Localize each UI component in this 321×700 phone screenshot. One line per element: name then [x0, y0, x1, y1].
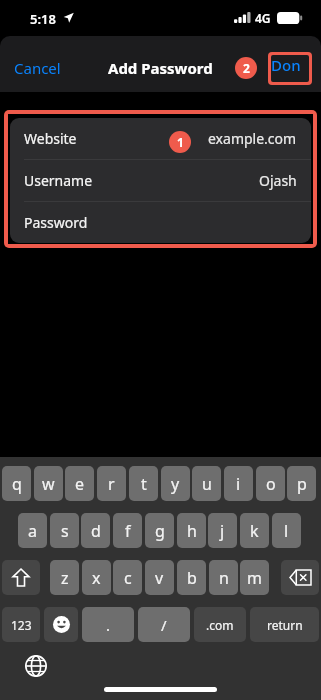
button[interactable]: k — [240, 513, 269, 548]
button[interactable]: i — [224, 466, 253, 501]
button[interactable]: d — [81, 513, 110, 548]
staticText: g — [155, 520, 165, 542]
staticText: example.com — [208, 129, 297, 148]
button[interactable]: . — [82, 607, 134, 642]
staticText: Password — [24, 213, 88, 232]
button[interactable]: Website — [10, 118, 311, 159]
staticText: Done — [271, 55, 309, 82]
staticText: u — [202, 473, 212, 495]
staticText: a — [28, 520, 37, 542]
button[interactable]: h — [177, 513, 206, 548]
staticText: 4G — [255, 10, 271, 26]
button[interactable]: b — [177, 560, 206, 595]
button[interactable]: Emoji — [44, 607, 78, 642]
button[interactable]: y — [161, 466, 190, 501]
staticText: s — [61, 520, 69, 542]
button[interactable]: u — [192, 466, 221, 501]
button[interactable]: r — [97, 466, 126, 501]
staticText: z — [61, 567, 69, 589]
button[interactable]: return — [250, 607, 319, 642]
staticText: h — [187, 520, 197, 542]
button[interactable]: j — [208, 513, 237, 548]
button[interactable]: l — [272, 513, 301, 548]
button[interactable]: w — [34, 466, 63, 501]
staticText: Ojash — [259, 171, 297, 190]
staticText: o — [266, 473, 276, 495]
staticText: f — [125, 520, 131, 542]
staticText: b — [187, 567, 197, 589]
staticText: n — [219, 567, 229, 589]
staticText: c — [124, 567, 132, 589]
staticText: j — [220, 520, 225, 542]
staticText: r — [108, 473, 115, 495]
staticText: . — [106, 615, 111, 635]
staticText: w — [42, 473, 55, 495]
button[interactable]: c — [113, 560, 142, 595]
button[interactable]: / — [138, 607, 190, 642]
button[interactable]: n — [209, 560, 238, 595]
button[interactable]: Done — [271, 55, 309, 82]
button[interactable]: t — [129, 466, 158, 501]
button[interactable]: s — [50, 513, 79, 548]
button[interactable]: q — [2, 466, 31, 501]
button[interactable]: 123 — [2, 607, 40, 642]
button[interactable]: Switch keyboard language — [22, 652, 50, 680]
staticText: k — [250, 520, 259, 542]
button[interactable]: Password — [10, 202, 311, 243]
staticText: Username — [24, 171, 93, 190]
staticText: e — [75, 473, 85, 495]
staticText: i — [236, 473, 241, 495]
staticText: Add Password — [108, 58, 213, 78]
button[interactable]: Cancel — [6, 52, 69, 84]
button[interactable]: o — [256, 466, 285, 501]
staticText: Website — [24, 129, 77, 148]
button[interactable]: Backspace — [281, 560, 319, 595]
staticText: 2 — [243, 60, 250, 76]
staticText: m — [247, 567, 262, 589]
staticText: return — [267, 617, 303, 633]
button[interactable]: Shift — [2, 560, 40, 595]
staticText: v — [155, 567, 164, 589]
button[interactable]: Username — [10, 160, 311, 201]
button[interactable]: p — [287, 466, 316, 501]
staticText: 1 — [177, 134, 184, 150]
staticText: Cancel — [14, 58, 61, 78]
button[interactable]: a — [18, 513, 47, 548]
staticText: p — [297, 473, 307, 495]
staticText: x — [92, 567, 101, 589]
staticText: q — [12, 473, 22, 495]
staticText: 123 — [11, 617, 32, 633]
staticText: t — [141, 473, 147, 495]
button[interactable]: g — [145, 513, 174, 548]
staticText: d — [91, 520, 101, 542]
button[interactable]: .com — [194, 607, 246, 642]
button[interactable]: v — [145, 560, 174, 595]
staticText: .com — [206, 617, 234, 633]
staticText: 5:18 — [30, 10, 56, 28]
button[interactable]: e — [65, 466, 94, 501]
button[interactable]: f — [113, 513, 142, 548]
button[interactable]: m — [240, 560, 269, 595]
staticText: l — [284, 520, 289, 542]
staticText: / — [161, 615, 167, 635]
staticText: y — [171, 473, 180, 495]
button[interactable]: z — [50, 560, 79, 595]
button[interactable]: x — [82, 560, 111, 595]
